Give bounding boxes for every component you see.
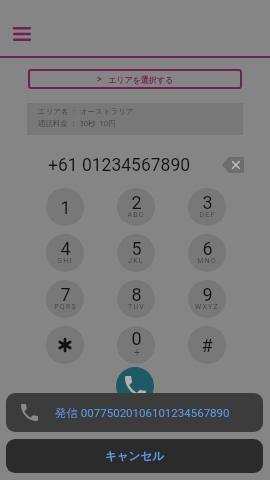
button[interactable]: 6 bbox=[188, 234, 226, 272]
staticText: 5 bbox=[131, 238, 142, 259]
staticText: TUV bbox=[128, 303, 145, 311]
staticText: 4 bbox=[60, 238, 71, 259]
button[interactable]: Menu bbox=[8, 20, 35, 48]
staticText: 0 bbox=[131, 328, 142, 349]
button[interactable]: 7 bbox=[46, 280, 84, 318]
button[interactable] bbox=[46, 326, 84, 364]
button[interactable]: 1 bbox=[46, 188, 84, 226]
staticText: 通話料金 ： 30秒 10円 bbox=[38, 118, 116, 128]
staticText: ABC bbox=[127, 211, 145, 219]
button[interactable]: 3 bbox=[188, 188, 226, 226]
staticText: 発信 00775020106101234567890 bbox=[55, 406, 230, 420]
staticText: GHI bbox=[57, 257, 73, 265]
staticText: 8 bbox=[131, 284, 142, 305]
button[interactable]: 2 bbox=[117, 188, 155, 226]
staticText: 6 bbox=[202, 238, 213, 259]
button[interactable]: 発信 00775020106101234567890 bbox=[6, 393, 263, 432]
staticText: 3 bbox=[202, 192, 213, 213]
button[interactable]: 5 bbox=[117, 234, 155, 272]
staticText: キャンセル bbox=[105, 449, 164, 463]
staticText: 1 bbox=[60, 197, 71, 218]
staticText: 2 bbox=[131, 192, 142, 213]
button[interactable]: 0 bbox=[117, 326, 155, 364]
button[interactable]: 8 bbox=[117, 280, 155, 318]
staticText: +61 01234567890 bbox=[48, 155, 191, 176]
staticText: MNO bbox=[197, 257, 217, 265]
staticText: エリアを選択する bbox=[108, 75, 174, 85]
staticText: エリア名 ： オーストラリア bbox=[38, 106, 134, 116]
button[interactable]: > bbox=[28, 69, 242, 89]
staticText: WXYZ bbox=[195, 303, 219, 311]
staticText: > bbox=[97, 74, 102, 85]
staticText: PQRS bbox=[54, 303, 77, 311]
button[interactable]: # bbox=[188, 326, 226, 364]
staticText: # bbox=[201, 335, 213, 356]
button[interactable]: 4 bbox=[46, 234, 84, 272]
button[interactable]: キャンセル bbox=[6, 439, 263, 473]
staticText: + bbox=[134, 347, 140, 359]
button[interactable]: Backspace bbox=[220, 154, 246, 176]
staticText: DEF bbox=[199, 211, 216, 219]
button[interactable]: Call bbox=[116, 367, 154, 405]
staticText: JKL bbox=[128, 257, 144, 265]
staticText: 7 bbox=[60, 284, 71, 305]
button[interactable]: 9 bbox=[188, 280, 226, 318]
staticText: 9 bbox=[202, 284, 213, 305]
